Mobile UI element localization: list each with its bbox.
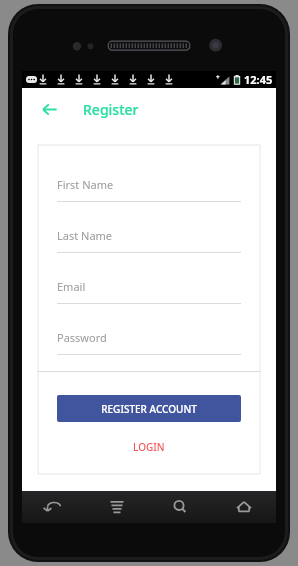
button[interactable]: Last Name — [57, 218, 241, 269]
staticText: LOGIN — [133, 440, 165, 454]
staticText: Register — [83, 100, 139, 119]
button[interactable]: Home — [212, 491, 276, 523]
staticText: Password — [57, 330, 107, 345]
button[interactable]: Search — [148, 491, 212, 523]
staticText: Email — [57, 279, 86, 294]
staticText: Last Name — [57, 228, 113, 243]
button[interactable]: REGISTER ACCOUNT — [57, 395, 241, 422]
button[interactable]: Back — [22, 491, 85, 523]
button[interactable]: Password — [57, 320, 241, 371]
staticText: First Name — [57, 177, 114, 192]
button[interactable]: LOGIN — [38, 436, 260, 458]
button[interactable]: Menu — [85, 491, 148, 523]
staticText: 12:45 — [244, 72, 273, 87]
button[interactable]: Email — [57, 269, 241, 320]
button[interactable]: First Name — [57, 167, 241, 218]
staticText: REGISTER ACCOUNT — [101, 402, 197, 416]
button[interactable]: Back — [32, 92, 66, 126]
